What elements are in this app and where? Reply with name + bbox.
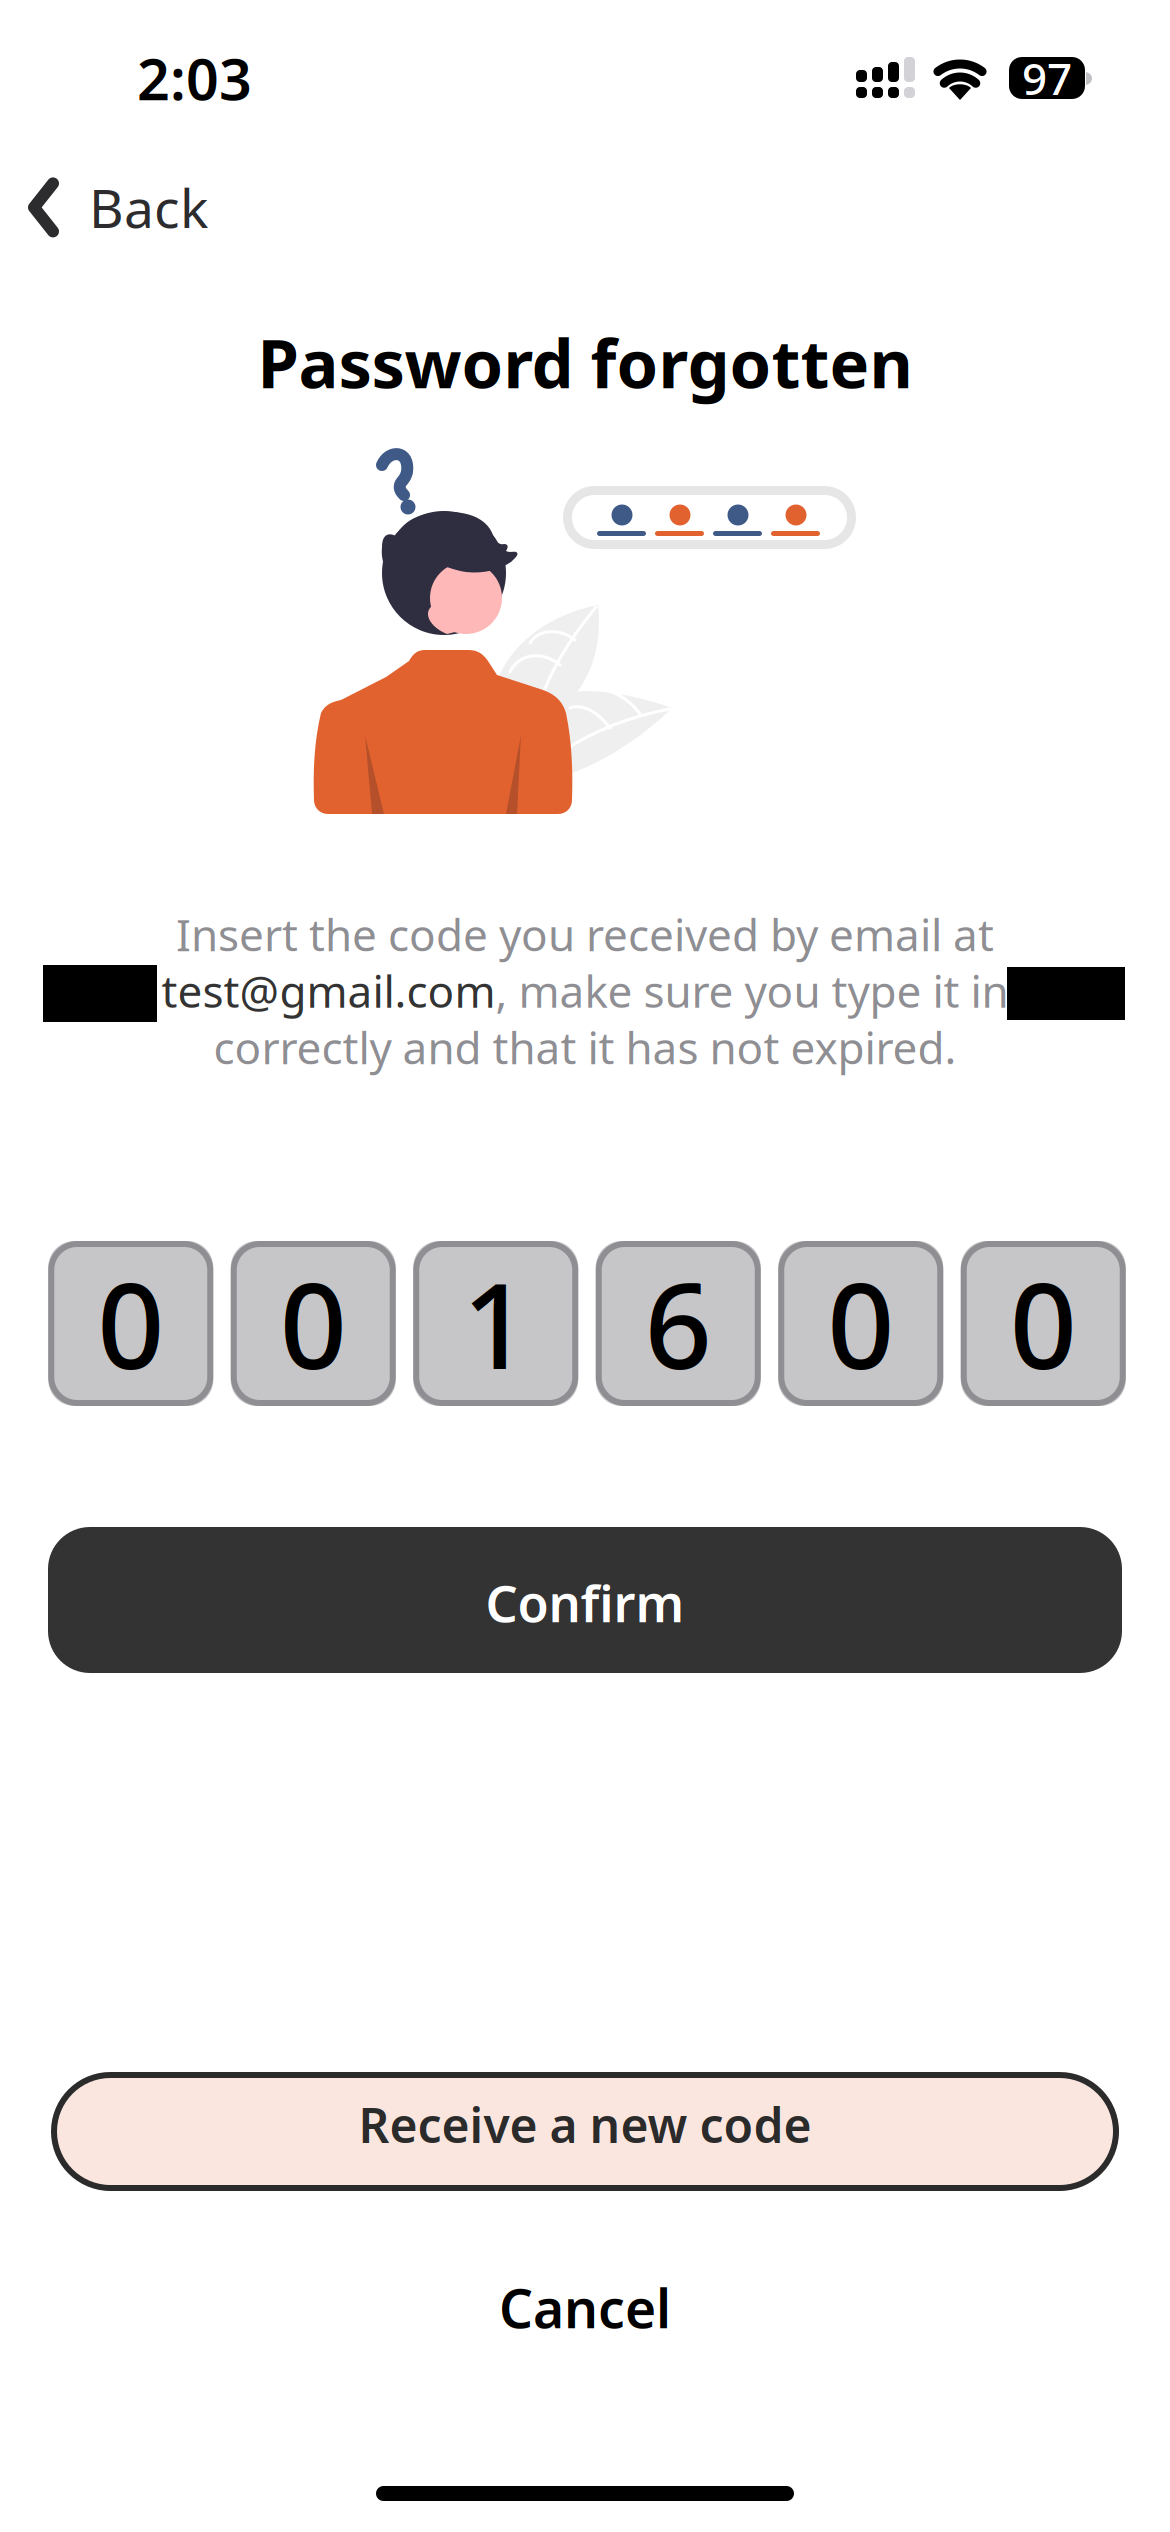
- staticText: Cancel: [499, 2272, 671, 2343]
- staticText: Password forgotten: [257, 318, 912, 406]
- button[interactable]: Back: [0, 150, 234, 265]
- staticText: 97: [1022, 49, 1072, 107]
- staticText: Back: [89, 172, 208, 243]
- staticText: test@gmail.com: [161, 961, 495, 1020]
- button[interactable]: Receive a new code: [51, 2072, 1119, 2191]
- staticText: , make sure you type it in: [495, 961, 1008, 1020]
- staticText: correctly and that it has not expired.: [213, 1018, 956, 1076]
- staticText: 0: [827, 1246, 894, 1401]
- staticText: 1: [462, 1246, 529, 1401]
- staticText: 2:03: [137, 40, 252, 116]
- staticText: Receive a new code: [358, 2093, 811, 2156]
- staticText: 0: [1010, 1246, 1077, 1401]
- staticText: 6: [645, 1246, 712, 1401]
- staticText: 0: [280, 1246, 347, 1401]
- button[interactable]: Confirm: [48, 1527, 1122, 1673]
- button[interactable]: Cancel: [405, 2262, 765, 2342]
- staticText: Insert the code you received by email at: [176, 905, 994, 963]
- staticText: Confirm: [485, 1569, 684, 1636]
- staticText: 0: [97, 1246, 164, 1401]
